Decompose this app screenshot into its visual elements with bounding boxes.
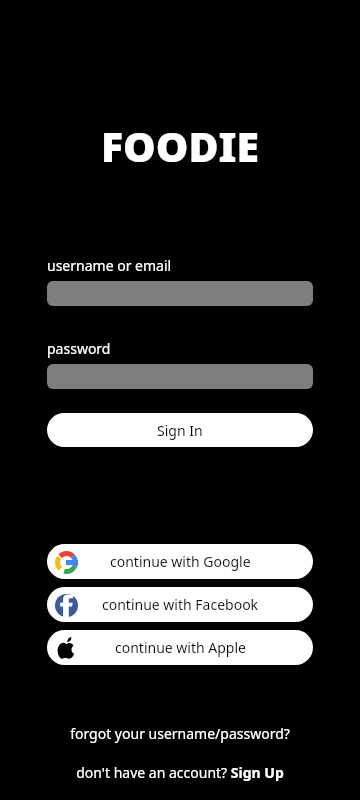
button[interactable]: Sign In bbox=[47, 413, 313, 447]
staticText: don't have an account? Sign Up bbox=[76, 763, 284, 782]
staticText: username or email bbox=[47, 256, 172, 275]
staticText: Sign In bbox=[157, 421, 203, 440]
button[interactable] bbox=[47, 364, 313, 389]
staticText: password bbox=[47, 339, 111, 358]
button[interactable]: continue with Google bbox=[47, 544, 313, 579]
button[interactable]: continue with Facebook bbox=[47, 587, 313, 622]
staticText: forgot your username/password? bbox=[70, 724, 290, 743]
button[interactable]: continue with Apple bbox=[47, 630, 313, 665]
staticText: continue with Google bbox=[110, 552, 251, 571]
staticText: FOODIE bbox=[101, 118, 260, 174]
button[interactable] bbox=[47, 281, 313, 306]
button[interactable]: don't have an account? Sign Up bbox=[47, 763, 313, 782]
staticText: continue with Facebook bbox=[102, 595, 259, 614]
staticText: continue with Apple bbox=[115, 638, 246, 657]
button[interactable]: forgot your username/password? bbox=[47, 724, 313, 743]
